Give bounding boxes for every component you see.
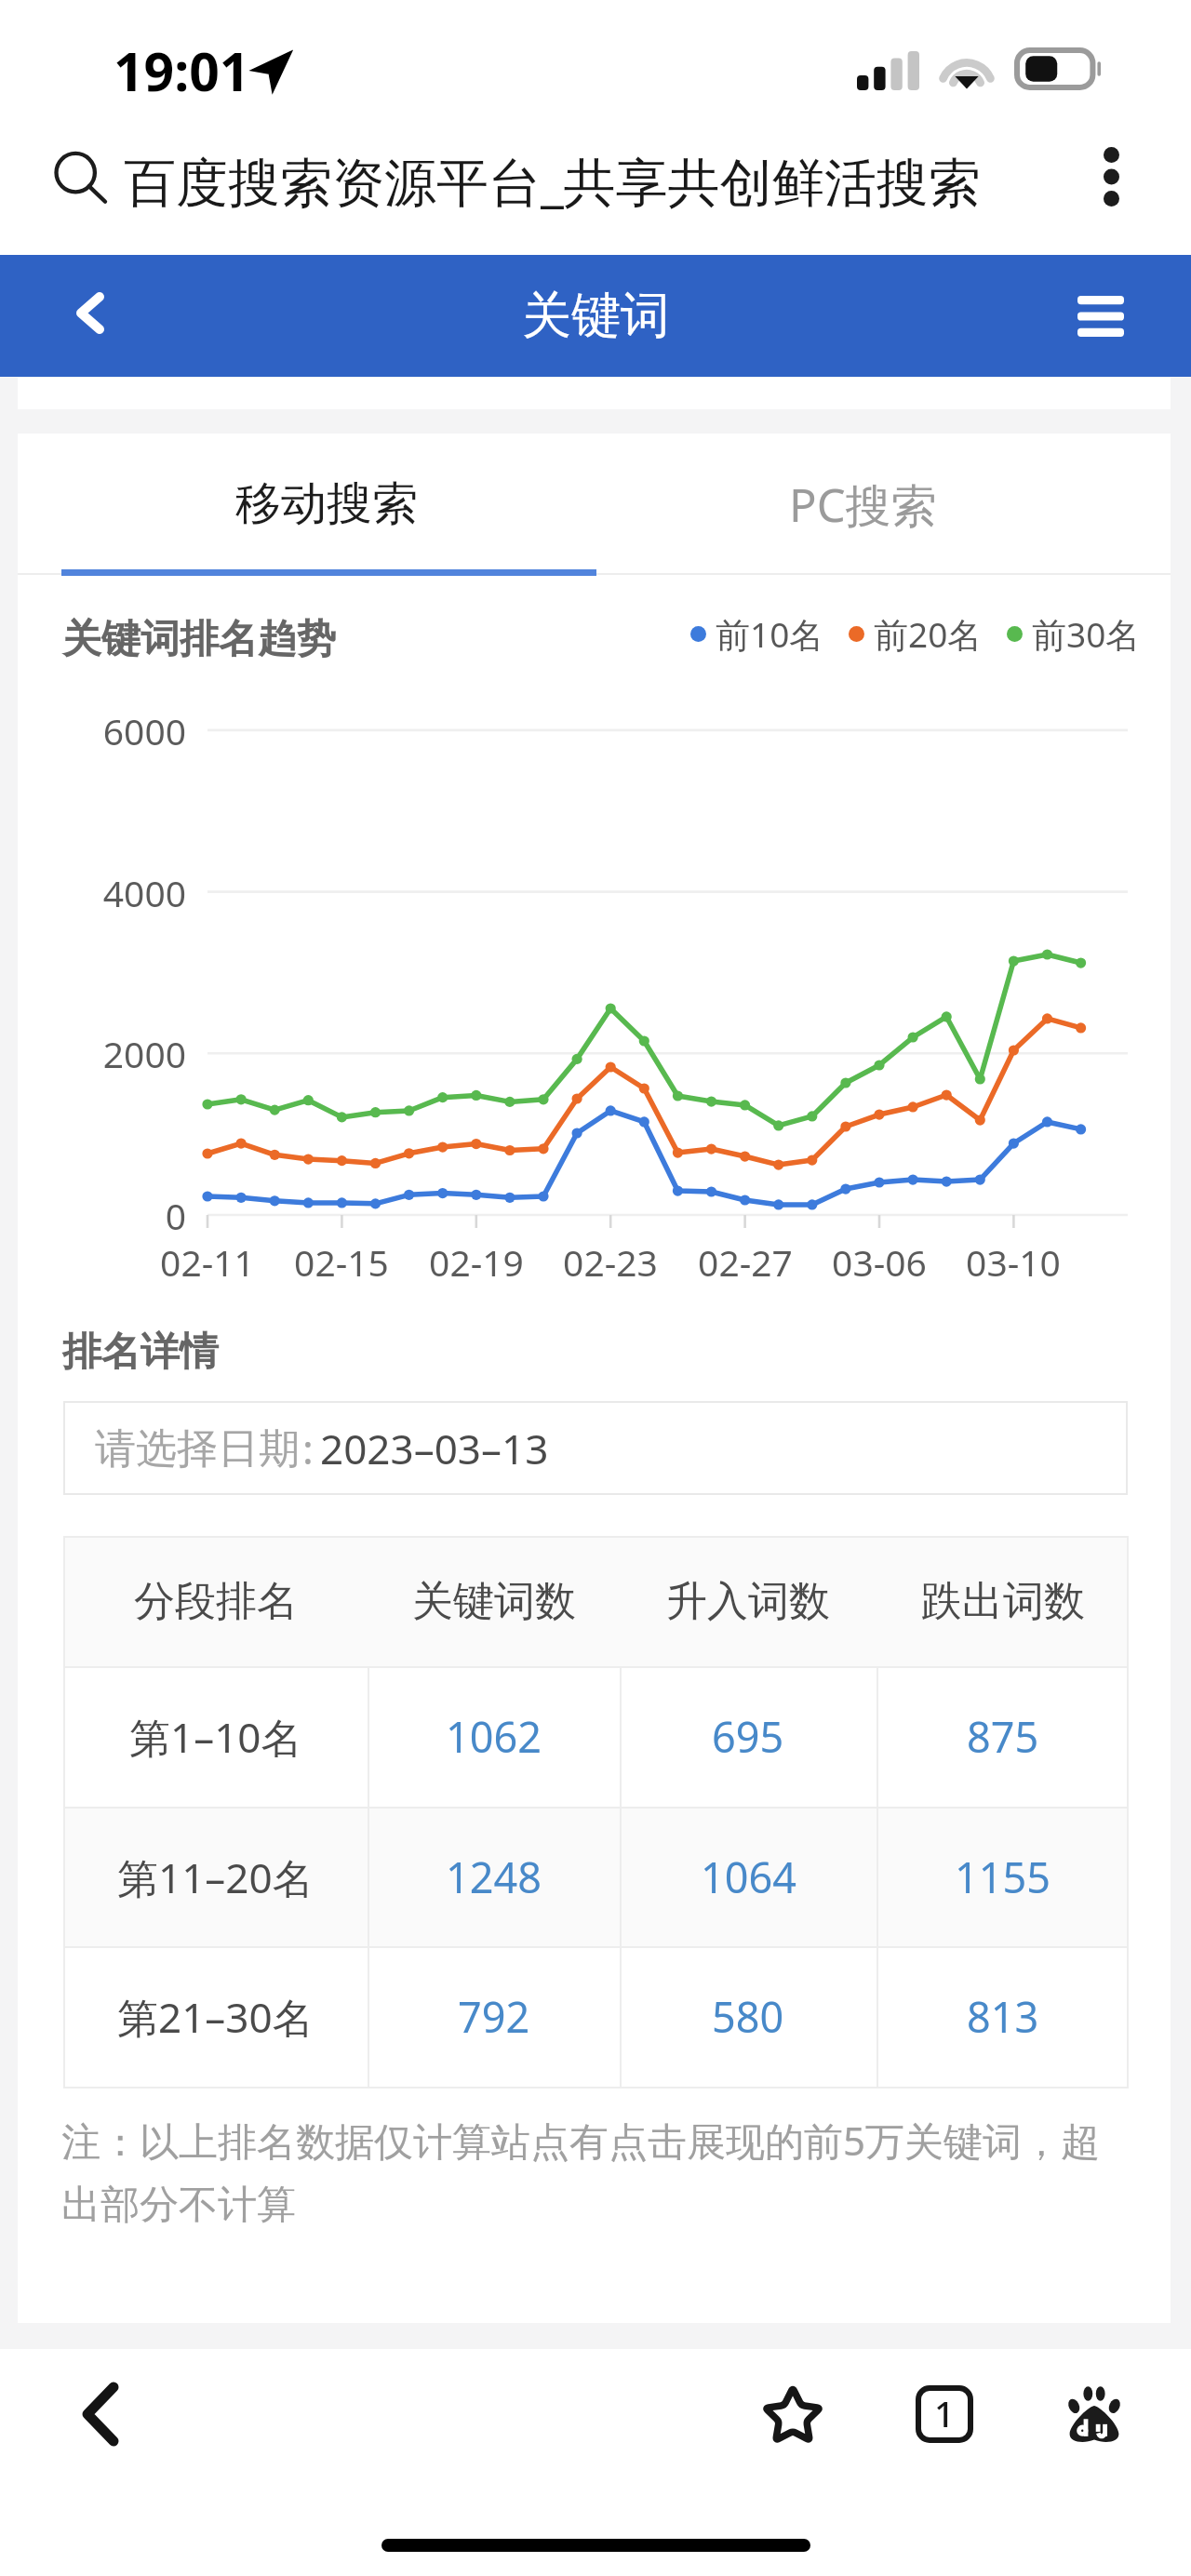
staticText: 1 xyxy=(934,2389,955,2437)
staticText: 前10名 xyxy=(716,610,824,658)
staticText: 695 xyxy=(712,1708,784,1765)
staticText: 第1–10名 xyxy=(129,1709,302,1765)
staticText: 关键词排名趋势 xyxy=(62,615,336,664)
staticText: 4000 xyxy=(0,868,186,917)
staticText: 6000 xyxy=(0,706,186,755)
staticText: 0 xyxy=(0,1191,186,1240)
staticText: 792 xyxy=(458,1988,530,2045)
staticText: 第11–20名 xyxy=(117,1849,314,1905)
staticText: 前20名 xyxy=(874,610,983,658)
staticText: 875 xyxy=(967,1708,1039,1765)
staticText: : xyxy=(302,1421,314,1476)
button[interactable]: Back xyxy=(51,268,129,357)
staticText: 02-11 xyxy=(114,1237,301,1287)
button[interactable]: More options xyxy=(1076,140,1146,214)
staticText: 1155 xyxy=(955,1849,1050,1905)
staticText: 03-06 xyxy=(786,1237,972,1287)
button[interactable] xyxy=(63,1666,1129,1807)
staticText: 跌出词数 xyxy=(921,1576,1085,1627)
staticText: 1062 xyxy=(446,1708,542,1765)
staticText: PC搜索 xyxy=(789,474,937,536)
staticText: 排名详情 xyxy=(62,1328,219,1377)
staticText: 02-19 xyxy=(383,1237,569,1287)
staticText: 02-23 xyxy=(517,1237,703,1287)
button[interactable]: 移动搜索 xyxy=(18,434,595,571)
button[interactable]: Bookmarks xyxy=(746,2368,839,2461)
staticText: 580 xyxy=(712,1988,784,2045)
button[interactable] xyxy=(63,1807,1129,1947)
staticText: 注：以上排名数据仅计算站点有点击展现的前5万关键词，超出部分不计算 xyxy=(61,2114,1131,2230)
button[interactable]: Tabs xyxy=(898,2368,991,2461)
staticText: 19:01 xyxy=(114,34,250,107)
staticText: 分段排名 xyxy=(134,1576,298,1627)
staticText: 02-15 xyxy=(248,1237,435,1287)
staticText: 前30名 xyxy=(1032,610,1141,658)
staticText: 2023–03–13 xyxy=(320,1421,549,1476)
staticText: 升入词数 xyxy=(666,1576,830,1627)
staticText: 1064 xyxy=(701,1849,796,1905)
staticText: 百度搜索资源平台_共享共创鲜活搜索 xyxy=(124,145,981,216)
staticText: 请选择日期 xyxy=(95,1423,300,1475)
staticText: 813 xyxy=(967,1988,1039,2045)
staticText: 关键词 xyxy=(522,285,670,347)
staticText: 移动搜索 xyxy=(235,475,418,533)
button[interactable]: PC搜索 xyxy=(595,434,1171,571)
staticText: 2000 xyxy=(0,1029,186,1078)
staticText: 1248 xyxy=(446,1849,542,1905)
button[interactable]: Menu xyxy=(1056,272,1145,361)
staticText: 关键词数 xyxy=(412,1576,576,1627)
staticText: 第21–30名 xyxy=(117,1989,314,2045)
staticText: 02-27 xyxy=(652,1237,838,1287)
button[interactable] xyxy=(63,1946,1129,2087)
button[interactable]: Baidu home xyxy=(1048,2368,1141,2461)
button[interactable]: 请选择日期 xyxy=(63,1401,1128,1495)
staticText: 03-10 xyxy=(920,1237,1106,1287)
button[interactable]: Back xyxy=(54,2368,147,2461)
